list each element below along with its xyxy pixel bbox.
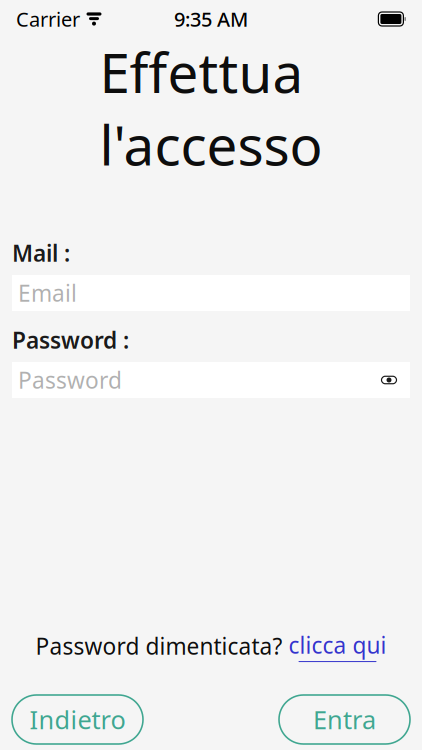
staticText: Carrier	[16, 6, 80, 32]
staticText: Indietro	[29, 703, 125, 736]
button[interactable]: clicca qui	[288, 630, 386, 662]
staticText: Entra	[313, 703, 376, 736]
staticText: Mail :	[12, 238, 70, 268]
staticText: Effettua l'accesso	[99, 35, 322, 181]
staticText: Email	[18, 278, 77, 308]
staticText: Password :	[12, 325, 129, 355]
staticText: Password	[18, 365, 122, 395]
button[interactable]: Indietro	[12, 695, 143, 744]
button[interactable]: Show password	[374, 362, 404, 398]
staticText: 9:35 AM	[174, 6, 248, 32]
button[interactable]: Entra	[279, 695, 410, 744]
staticText: Password dimenticata?	[35, 631, 282, 661]
staticText: clicca qui	[288, 630, 386, 660]
